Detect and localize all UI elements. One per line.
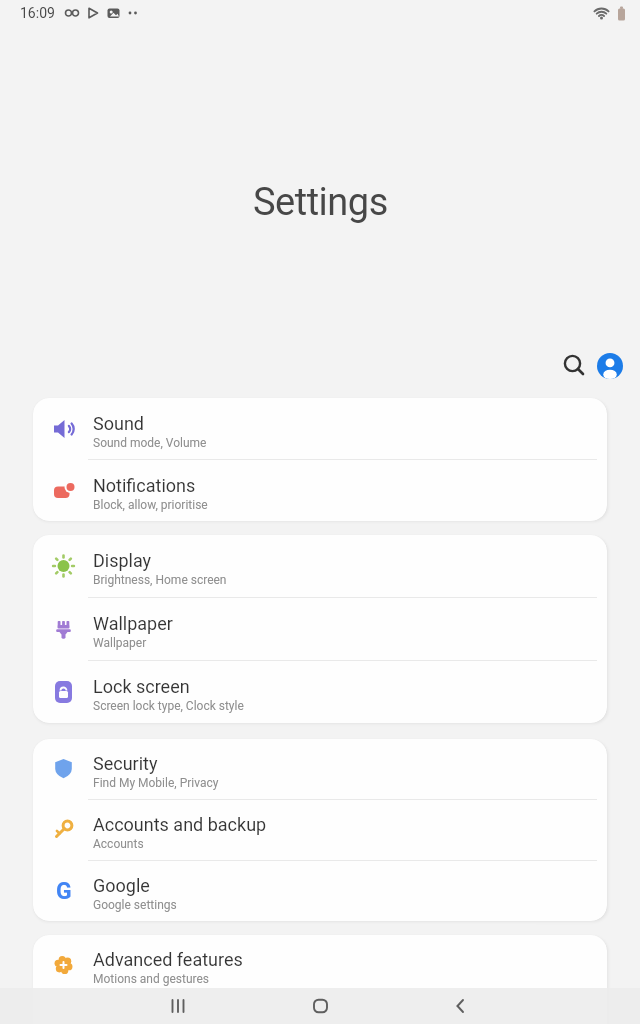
staticText: Accounts and backup <box>93 814 267 835</box>
staticText: Accounts <box>93 837 144 851</box>
staticText: Security <box>93 753 158 774</box>
staticText: Notifications <box>93 475 196 496</box>
staticText: Wallpaper <box>93 636 147 650</box>
staticText: Sound <box>93 413 144 434</box>
staticText: G <box>56 878 72 905</box>
button[interactable]: Wallpaper <box>33 598 607 660</box>
staticText: Sound mode, Volume <box>93 436 207 450</box>
staticText: Display <box>93 550 152 571</box>
button[interactable]: Display <box>33 535 607 597</box>
button[interactable] <box>300 988 340 1024</box>
button[interactable]: G <box>33 861 607 921</box>
button[interactable] <box>440 988 480 1024</box>
button[interactable]: Lock screen <box>33 661 607 723</box>
staticText: 16:09 <box>20 5 55 21</box>
button[interactable]: Accounts and backup <box>33 800 607 860</box>
staticText: Wallpaper <box>93 613 173 634</box>
button[interactable] <box>597 353 623 379</box>
staticText: Google <box>93 875 150 896</box>
staticText: Find My Mobile, Privacy <box>93 776 219 790</box>
staticText: Lock screen <box>93 676 190 697</box>
staticText: Brightness, Home screen <box>93 573 227 587</box>
button[interactable] <box>559 351 589 381</box>
button[interactable]: Advanced features <box>33 935 607 995</box>
staticText: Motions and gestures <box>93 972 210 986</box>
button[interactable]: Security <box>33 739 607 799</box>
button[interactable]: Sound <box>33 398 607 459</box>
staticText: Block, allow, prioritise <box>93 498 208 512</box>
button[interactable]: Notifications <box>33 460 607 521</box>
staticText: Google settings <box>93 898 177 912</box>
staticText: Screen lock type, Clock style <box>93 699 244 713</box>
staticText: Settings <box>253 180 388 225</box>
button[interactable] <box>158 988 198 1024</box>
staticText: Advanced features <box>93 949 243 970</box>
